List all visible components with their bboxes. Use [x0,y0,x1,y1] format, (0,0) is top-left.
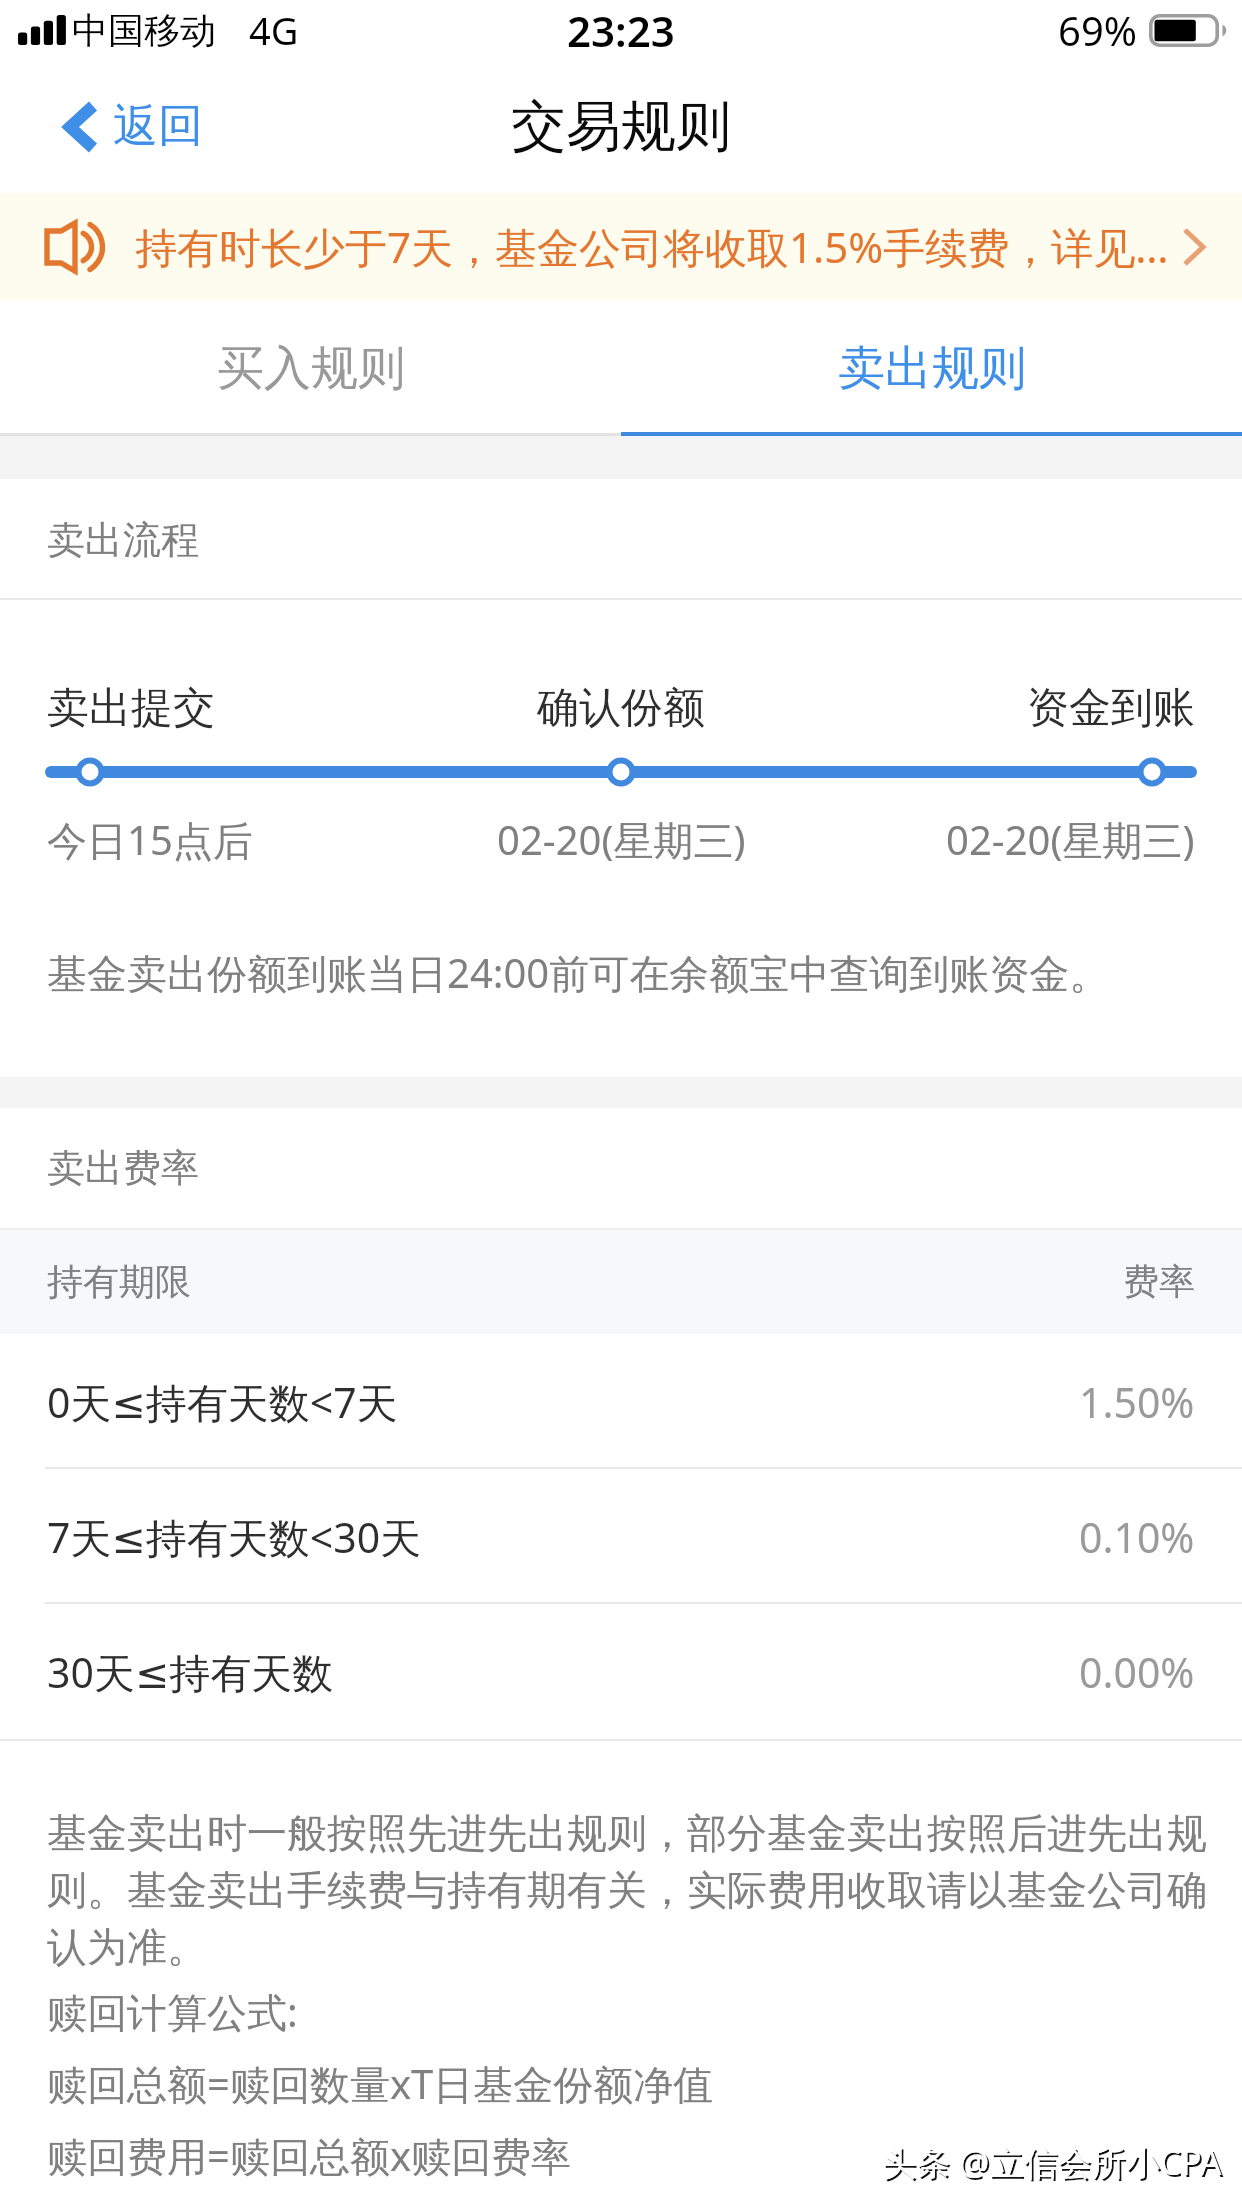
staticText: 卖出费率 [47,1144,199,1192]
staticText: 69% [1058,3,1137,57]
staticText: 30天≤持有天数 [47,1644,334,1700]
staticText: 赎回计算公式: [47,1984,298,2039]
staticText: 7天≤持有天数<30天 [47,1509,422,1565]
staticText: 持有期限 [47,1259,191,1304]
staticText: 头条 @立信会所小CPA [882,2139,1222,2185]
staticText: 基金卖出时一般按照先进先出规则，部分基金卖出按照后进先出规则。基金卖出手续费与持… [47,1808,1222,1972]
button[interactable]: 30天≤持有天数 [0,1604,1242,1739]
staticText: 23:23 [567,2,675,59]
button[interactable]: 公告 [0,193,1242,300]
staticText: 头条 @立信会所小CPA [887,2144,1227,2190]
staticText: 基金卖出份额到账当日24:00前可在余额宝中查询到账资金。 [47,945,1110,1000]
staticText: 卖出提交 [47,682,215,735]
staticText: 0.00% [1079,1644,1195,1700]
staticText: 今日15点后 [47,812,253,867]
staticText: 1.50% [1079,1374,1195,1430]
button[interactable]: 返回 [0,84,229,169]
staticText: 02-20(星期三) [497,812,746,867]
staticText: 中国移动 [72,8,216,53]
staticText: 持有时长少于7天，基金公司将收取1.5%手续费，详见… [135,218,1178,275]
staticText: 卖出规则 [838,339,1026,398]
staticText: 交易规则 [511,92,731,161]
staticText: 02-20(星期三) [946,812,1195,867]
button[interactable]: 卖出规则 [621,300,1242,436]
staticText: 确认份额 [537,682,705,735]
staticText: 赎回总额=赎回数量xT日基金份额净值 [47,2056,714,2111]
staticText: 0天≤持有天数<7天 [47,1374,398,1430]
staticText: 卖出流程 [47,516,199,564]
button[interactable]: 7天≤持有天数<30天 [0,1469,1242,1604]
other: 公告 [44,221,102,273]
staticText: 4G [249,4,299,56]
staticText: 买入规则 [217,339,405,398]
staticText: 0.10% [1079,1509,1195,1565]
button[interactable]: 0天≤持有天数<7天 [0,1334,1242,1469]
button[interactable]: 买入规则 [0,300,621,436]
staticText: 头条 @立信会所小CPA [884,2141,1224,2187]
staticText: 赎回费用=赎回总额x赎回费率 [47,2128,572,2183]
staticText: 资金到账 [1027,682,1195,735]
staticText: 费率 [1123,1259,1195,1304]
staticText: 返回 [113,98,203,155]
